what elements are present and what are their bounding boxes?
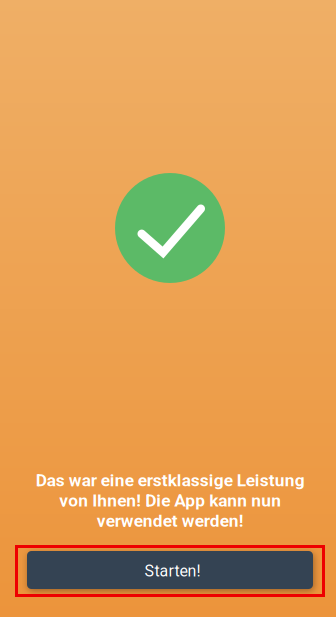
button[interactable]: Starten!	[27, 545, 313, 597]
staticText: Starten!	[144, 562, 200, 580]
staticText: Das war eine erstklassige Leistung von I…	[35, 470, 304, 531]
